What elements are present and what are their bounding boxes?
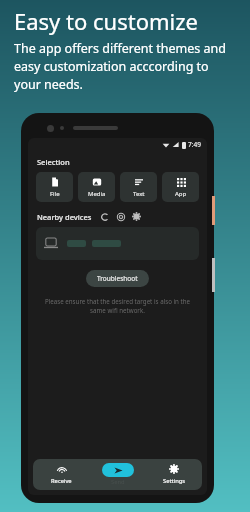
staticText: Settings (163, 477, 186, 485)
staticText: File (50, 190, 60, 198)
staticText: Troubleshoot (97, 274, 138, 283)
staticText: Please ensure that the desired target is… (42, 297, 193, 315)
button[interactable]: App (162, 172, 199, 202)
button[interactable]: Troubleshoot (86, 270, 149, 287)
button[interactable]: Scan (115, 211, 126, 222)
staticText: Receive (51, 477, 72, 485)
staticText: Easy to customize (14, 6, 198, 36)
staticText: Nearby devices (37, 212, 92, 222)
button[interactable]: Send (90, 459, 146, 490)
staticText: Media (88, 190, 106, 198)
staticText: App (175, 190, 187, 198)
button[interactable]: Receive (33, 459, 90, 490)
button[interactable]: Refresh (99, 211, 110, 222)
button[interactable] (36, 227, 199, 260)
staticText: Text (133, 190, 145, 198)
staticText: The app offers different themes and easy… (14, 40, 238, 93)
button[interactable]: Settings (146, 459, 202, 490)
button[interactable]: Text (120, 172, 157, 202)
staticText: 7:49 (188, 140, 201, 149)
button[interactable]: Device settings (131, 211, 142, 222)
button[interactable]: Media (78, 172, 115, 202)
button[interactable]: File (36, 172, 73, 202)
staticText: Selection (37, 157, 70, 167)
